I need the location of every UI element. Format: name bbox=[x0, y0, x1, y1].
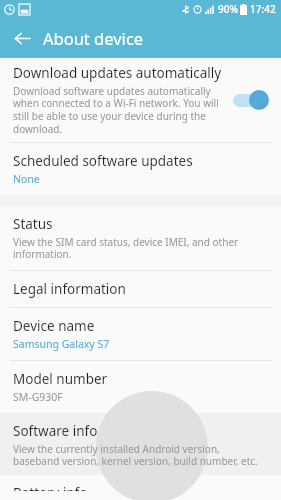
staticText: About device bbox=[43, 27, 144, 49]
button[interactable]: Legal information bbox=[0, 271, 281, 307]
button[interactable]: Software info bbox=[0, 413, 281, 475]
staticText: 90% bbox=[218, 2, 238, 16]
button[interactable]: Model number bbox=[0, 361, 281, 413]
staticText: Download updates automatically bbox=[13, 64, 222, 82]
staticText: Model number bbox=[13, 370, 108, 388]
staticText: Download software updates automatically … bbox=[13, 84, 225, 136]
staticText: Battery info bbox=[13, 484, 88, 491]
button[interactable]: Scheduled software updates bbox=[0, 143, 281, 195]
staticText: Legal information bbox=[13, 280, 126, 298]
staticText: View the currently installed Android ver… bbox=[13, 442, 268, 468]
staticText: Scheduled software updates bbox=[13, 152, 193, 170]
button[interactable]: Download updates automatically bbox=[0, 58, 281, 142]
staticText: 17:42 bbox=[250, 2, 276, 16]
button[interactable]: Back bbox=[6, 22, 38, 54]
staticText: Software info bbox=[13, 422, 98, 440]
button[interactable]: Status bbox=[0, 206, 281, 270]
staticText: None bbox=[13, 172, 40, 186]
button[interactable]: Device name bbox=[0, 308, 281, 360]
staticText: Status bbox=[13, 215, 53, 233]
staticText: View the SIM card status, device IMEI, a… bbox=[13, 235, 268, 261]
button[interactable]: Battery info bbox=[0, 475, 281, 500]
staticText: Device name bbox=[13, 317, 95, 335]
staticText: SM-G930F bbox=[13, 390, 63, 404]
staticText: Samsung Galaxy S7 bbox=[13, 337, 110, 351]
